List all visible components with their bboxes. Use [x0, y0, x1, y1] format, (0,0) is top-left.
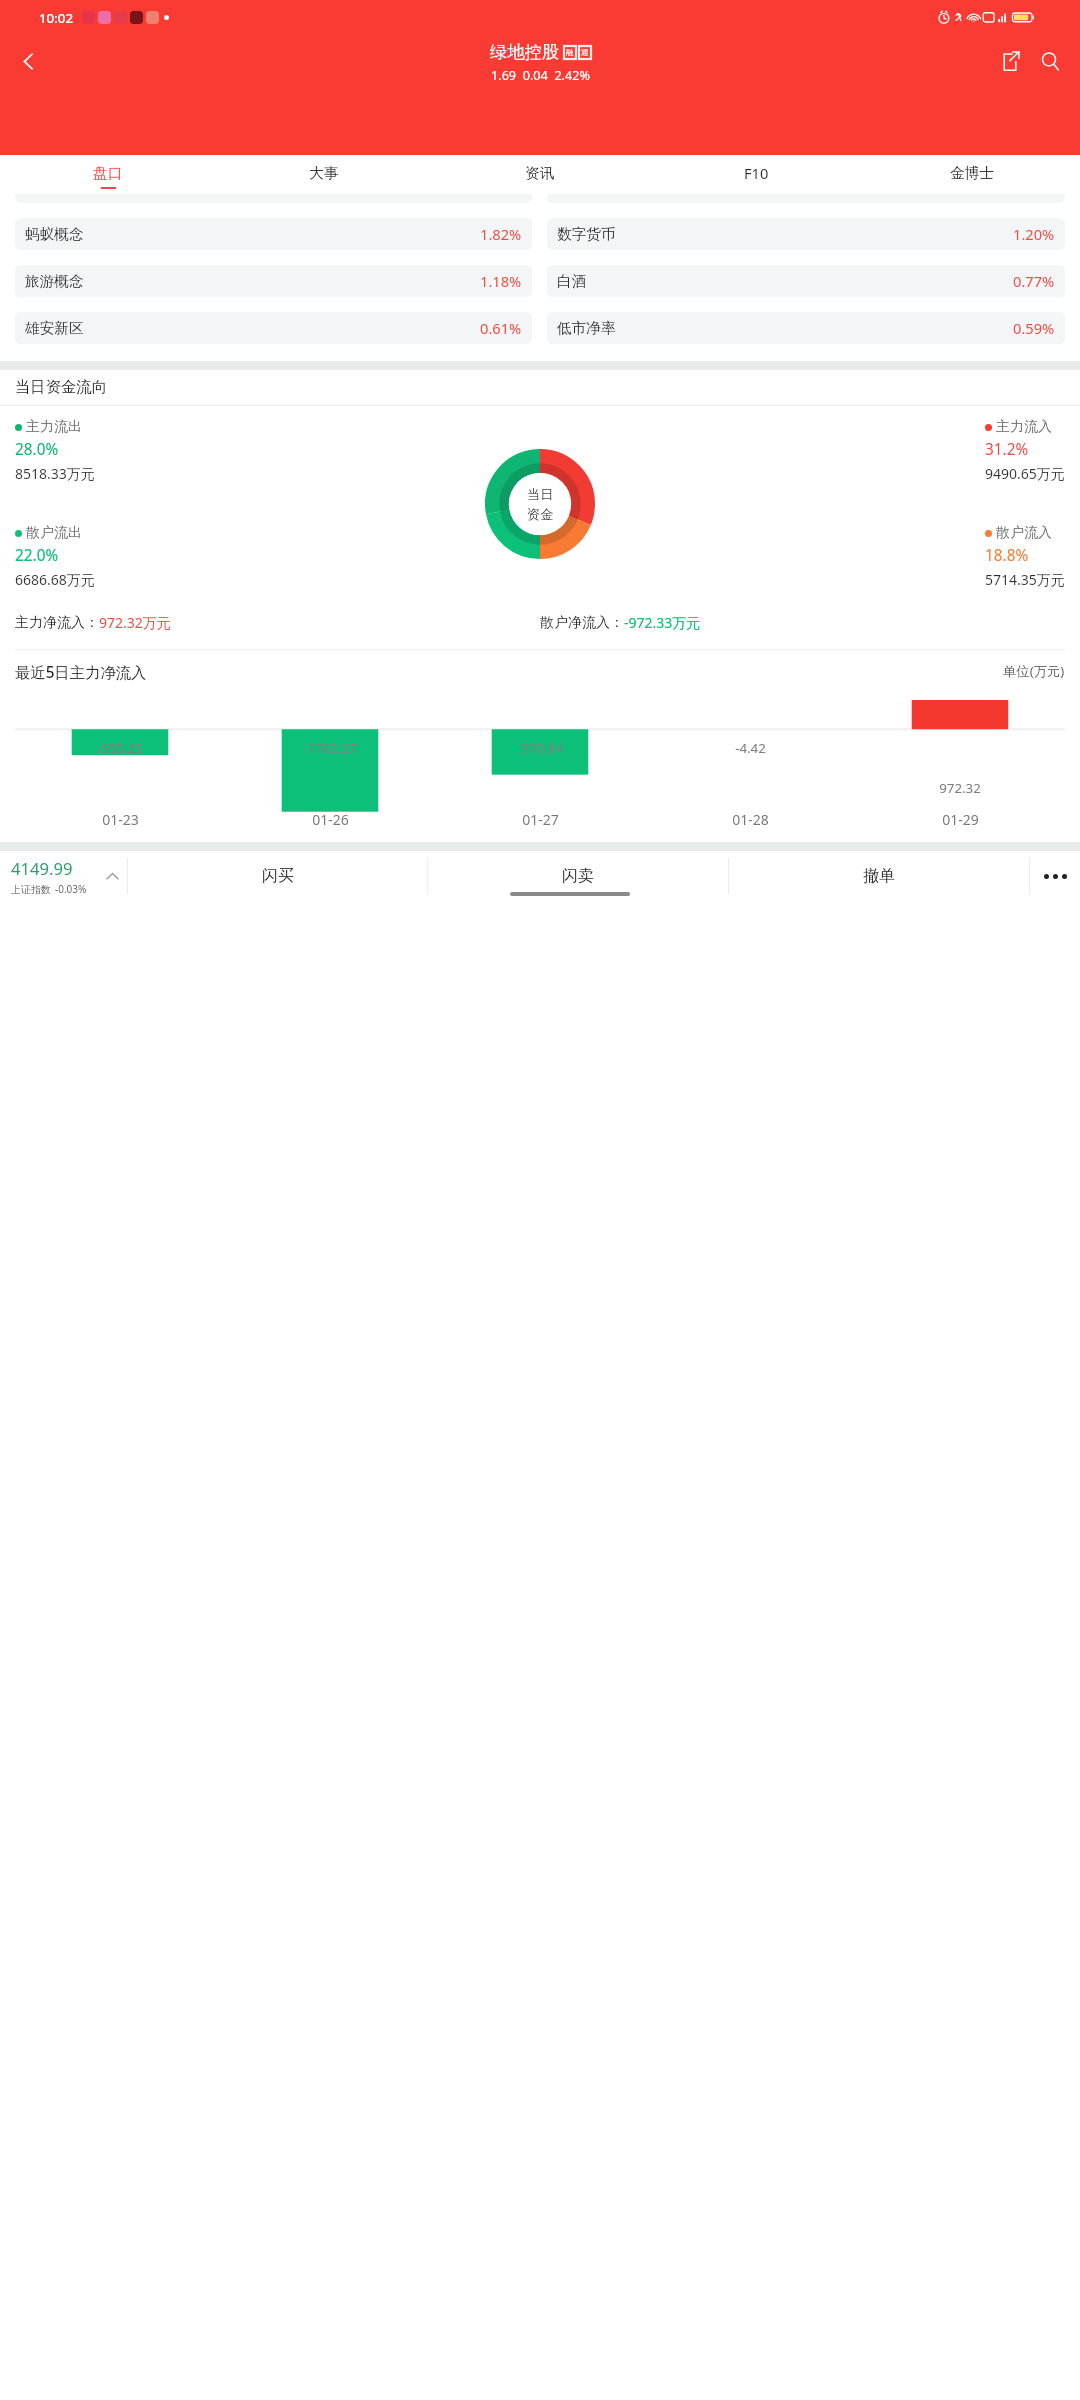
- button[interactable]: 低市净率: [547, 312, 1065, 344]
- staticText: -555.25: [97, 739, 143, 757]
- staticText: 金博士: [950, 164, 994, 182]
- staticText: -4.42: [735, 739, 766, 757]
- button[interactable]: 闪买: [128, 851, 427, 901]
- staticText: 当日资金流向: [15, 377, 107, 396]
- button[interactable]: 白酒: [547, 265, 1065, 297]
- staticText: 闪卖: [562, 866, 594, 886]
- staticText: 单位(万元): [1003, 662, 1065, 680]
- button[interactable]: 4149.99: [0, 857, 97, 896]
- staticText: 01-27: [522, 810, 559, 829]
- staticText: 盘口: [93, 164, 123, 182]
- staticText: 撤单: [863, 866, 895, 886]
- staticText: 1.69 0.04 2.42%: [491, 66, 591, 83]
- staticText: 白酒: [557, 272, 587, 290]
- staticText: -970.84: [517, 739, 563, 757]
- staticText: 当日: [527, 486, 554, 503]
- staticText: 1.82%: [480, 224, 522, 244]
- button[interactable]: 雄安新区: [15, 312, 532, 344]
- button[interactable]: 大事: [216, 155, 432, 194]
- button[interactable]: Back: [10, 43, 47, 80]
- staticText: 10:02: [39, 9, 74, 27]
- staticText: 01-29: [942, 810, 979, 829]
- button[interactable]: 蚂蚁概念: [15, 218, 532, 250]
- staticText: 上证指数: [11, 883, 51, 896]
- button[interactable]: 资讯: [432, 155, 648, 194]
- button[interactable]: F10: [648, 155, 864, 194]
- staticText: 低市净率: [557, 319, 616, 337]
- staticText: 18.8%: [985, 545, 1029, 566]
- staticText: 融: [566, 48, 574, 57]
- staticText: -0.03%: [55, 882, 87, 896]
- staticText: 雄安新区: [25, 319, 84, 337]
- staticText: 主力流出: [26, 418, 82, 436]
- button[interactable]: 数字货币: [547, 218, 1065, 250]
- staticText: 22.0%: [15, 545, 59, 566]
- staticText: 资讯: [525, 164, 555, 182]
- staticText: 大事: [309, 164, 339, 182]
- staticText: 1.20%: [1013, 224, 1055, 244]
- button[interactable]: More: [1030, 851, 1080, 901]
- button[interactable]: 金博士: [864, 155, 1080, 194]
- button[interactable]: Search: [1034, 45, 1067, 78]
- staticText: 旅游概念: [25, 272, 84, 290]
- staticText: 数字货币: [557, 225, 616, 243]
- staticText: -972.33万元: [624, 613, 701, 632]
- staticText: 散户流入: [996, 524, 1052, 542]
- staticText: 散户流出: [26, 524, 82, 542]
- staticText: F10: [744, 163, 769, 183]
- staticText: 01-28: [732, 810, 769, 829]
- staticText: 绿地控股: [490, 41, 560, 63]
- staticText: 通: [581, 48, 589, 57]
- staticText: 0.77%: [1013, 271, 1055, 291]
- staticText: 1.18%: [480, 271, 522, 291]
- staticText: 0.59%: [1013, 318, 1055, 338]
- staticText: 01-26: [312, 810, 349, 829]
- staticText: 5714.35万元: [985, 570, 1065, 589]
- staticText: 972.32万元: [99, 613, 171, 632]
- staticText: 散户净流入：: [540, 614, 624, 632]
- staticText: 最近5日主力净流入: [15, 662, 147, 683]
- button[interactable]: 旅游概念: [15, 265, 532, 297]
- staticText: 0.61%: [480, 318, 522, 338]
- staticText: 闪买: [262, 866, 294, 886]
- staticText: -1762.27: [303, 739, 357, 757]
- staticText: 31.2%: [985, 439, 1029, 460]
- button[interactable]: 闪卖: [428, 851, 728, 901]
- button[interactable]: 盘口: [0, 155, 216, 194]
- staticText: 6686.68万元: [15, 570, 95, 589]
- staticText: 9490.65万元: [985, 464, 1065, 483]
- staticText: 8518.33万元: [15, 464, 95, 483]
- button[interactable]: Expand: [97, 851, 127, 901]
- staticText: 蚂蚁概念: [25, 225, 84, 243]
- staticText: 28.0%: [15, 439, 59, 460]
- button[interactable]: 撤单: [729, 851, 1029, 901]
- staticText: 972.32: [939, 779, 981, 797]
- staticText: 主力流入: [996, 418, 1052, 436]
- staticText: 主力净流入：: [15, 614, 99, 632]
- staticText: 01-23: [102, 810, 139, 829]
- staticText: 资金: [527, 506, 554, 523]
- button[interactable]: Share: [993, 45, 1026, 78]
- staticText: 4149.99: [11, 857, 73, 880]
